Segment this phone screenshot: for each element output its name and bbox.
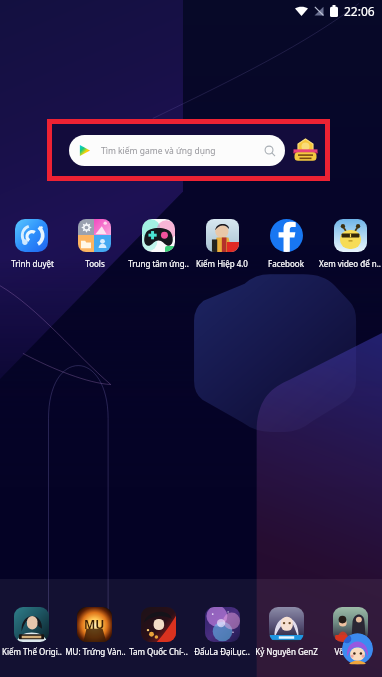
staticText: Facebook xyxy=(268,258,304,269)
staticText: Xem video để n.. xyxy=(319,258,381,269)
staticText: Trình duyệt xyxy=(11,258,54,269)
staticText: Tìm kiếm game và ứng dụng xyxy=(101,145,216,157)
button[interactable]: Trợ lý xyxy=(342,633,373,666)
staticText: Trung tâm ứng.. xyxy=(128,258,189,269)
button[interactable]: Tìm kiếm game và ứng dụng xyxy=(69,135,285,166)
button[interactable]: Kỷ Nguyên GenZ xyxy=(254,607,318,657)
button[interactable]: Trung tâm ứng.. xyxy=(126,219,190,269)
staticText: Kiếm Thế Origi.. xyxy=(2,646,62,657)
button[interactable]: Tools xyxy=(63,219,126,269)
button[interactable]: Sự kiện xyxy=(293,139,318,162)
button[interactable]: Kiếm Thế Origi.. xyxy=(0,607,63,657)
button[interactable]: MU xyxy=(63,607,126,657)
staticText: Tools xyxy=(85,258,105,269)
button[interactable]: Tam Quốc Chí-.. xyxy=(126,607,190,657)
staticText: Kỷ Nguyên GenZ xyxy=(255,646,318,657)
staticText: ĐấuLa ĐạiLục.. xyxy=(194,646,250,657)
button[interactable]: Kiếm Hiệp 4.0 xyxy=(190,219,254,269)
staticText: Kiếm Hiệp 4.0 xyxy=(196,258,248,269)
button[interactable]: ĐấuLa ĐạiLục.. xyxy=(190,607,254,657)
button[interactable]: Facebook xyxy=(254,219,318,269)
button[interactable]: Võ Lâm.. xyxy=(318,607,382,657)
button[interactable]: Xem video để n.. xyxy=(318,219,382,269)
staticText: 22:06 xyxy=(344,3,375,19)
button[interactable]: Trình duyệt xyxy=(0,219,63,269)
staticText: Võ Lâm.. xyxy=(334,646,367,657)
staticText: MU: Trứng Vàn.. xyxy=(65,646,126,657)
staticText: MU xyxy=(84,616,105,632)
staticText: Tam Quốc Chí-.. xyxy=(129,646,188,657)
